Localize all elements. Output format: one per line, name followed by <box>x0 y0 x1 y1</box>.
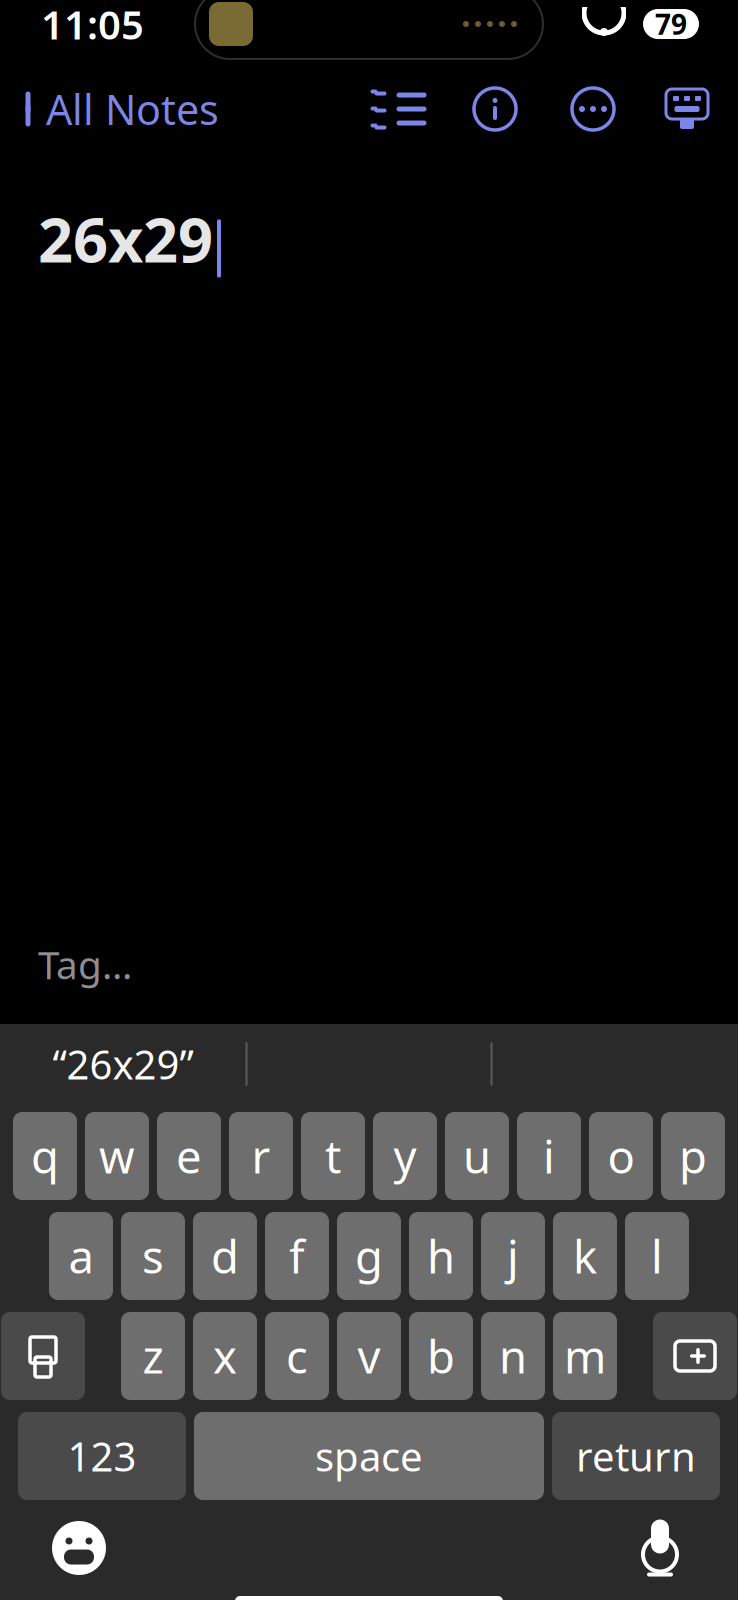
button[interactable]: “26x29” <box>0 1026 245 1102</box>
staticText: x <box>213 1326 237 1386</box>
staticText: b <box>427 1326 455 1386</box>
button[interactable]: More <box>568 84 618 134</box>
button[interactable]: x <box>193 1312 257 1400</box>
staticText: “26x29” <box>52 1037 193 1090</box>
staticText: g <box>355 1226 383 1286</box>
button[interactable]: Shift <box>1 1312 85 1400</box>
button[interactable]: w <box>85 1112 149 1200</box>
staticText: space <box>315 1429 423 1482</box>
staticText: return <box>576 1429 696 1482</box>
staticText: w <box>99 1126 135 1186</box>
button[interactable]: n <box>481 1312 545 1400</box>
staticText: m <box>564 1326 606 1386</box>
button[interactable]: i <box>517 1112 581 1200</box>
staticText: j <box>507 1226 519 1286</box>
button[interactable]: p <box>661 1112 725 1200</box>
button[interactable]: f <box>265 1212 329 1300</box>
button[interactable]: v <box>337 1312 401 1400</box>
button[interactable]: l <box>625 1212 689 1300</box>
button[interactable]: u <box>445 1112 509 1200</box>
button[interactable]: Checklist <box>370 87 426 131</box>
staticText: d <box>211 1226 239 1286</box>
staticText: v <box>357 1326 380 1386</box>
button[interactable]: b <box>409 1312 473 1400</box>
button[interactable]: r <box>229 1112 293 1200</box>
staticText: t <box>325 1126 341 1186</box>
staticText: c <box>286 1326 308 1386</box>
staticText: 26x29 <box>38 198 213 279</box>
button[interactable]: g <box>337 1212 401 1300</box>
staticText: h <box>427 1226 455 1286</box>
button[interactable]: Emoji <box>0 1513 108 1583</box>
button[interactable]: h <box>409 1212 473 1300</box>
button[interactable]: m <box>553 1312 617 1400</box>
staticText: All Notes <box>46 82 219 136</box>
button[interactable]: Dictation <box>638 1513 738 1583</box>
staticText: 123 <box>67 1429 136 1482</box>
staticText: l <box>651 1226 663 1286</box>
button[interactable]: q <box>13 1112 77 1200</box>
button[interactable]: o <box>589 1112 653 1200</box>
button[interactable]: s <box>121 1212 185 1300</box>
button[interactable]: space <box>194 1412 544 1500</box>
staticText: k <box>573 1226 597 1286</box>
staticText: r <box>251 1126 270 1186</box>
button[interactable]: z <box>121 1312 185 1400</box>
staticText: o <box>607 1126 634 1186</box>
button[interactable]: y <box>373 1112 437 1200</box>
button[interactable]: Format <box>470 84 520 134</box>
staticText: s <box>142 1226 164 1286</box>
staticText: n <box>499 1326 527 1386</box>
button[interactable]: Delete <box>653 1312 737 1400</box>
button[interactable]: t <box>301 1112 365 1200</box>
staticText: a <box>68 1226 93 1286</box>
staticText: f <box>289 1226 305 1286</box>
button[interactable]: a <box>49 1212 113 1300</box>
button[interactable]: Hide Keyboard <box>662 85 712 133</box>
button[interactable]: c <box>265 1312 329 1400</box>
staticText: e <box>176 1126 202 1186</box>
staticText: 11:05 <box>41 0 144 50</box>
button[interactable]: e <box>157 1112 221 1200</box>
staticText: i <box>543 1126 555 1186</box>
button[interactable]: d <box>193 1212 257 1300</box>
staticText: q <box>31 1126 59 1186</box>
staticText: p <box>679 1126 707 1186</box>
staticText: 79 <box>655 5 687 43</box>
button[interactable]: return <box>552 1412 720 1500</box>
button[interactable]: All Notes <box>0 74 219 144</box>
staticText: Tag... <box>38 939 132 990</box>
staticText: z <box>142 1326 163 1386</box>
staticText: u <box>463 1126 491 1186</box>
button[interactable]: k <box>553 1212 617 1300</box>
staticText: y <box>393 1126 416 1186</box>
button[interactable]: j <box>481 1212 545 1300</box>
button[interactable]: 123 <box>18 1412 186 1500</box>
